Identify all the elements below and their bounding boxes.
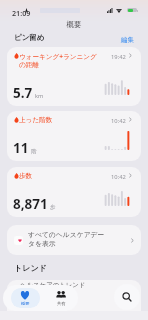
button[interactable]: 編集 bbox=[119, 34, 136, 46]
staticText: 共有 bbox=[57, 301, 66, 306]
staticText: 概要 bbox=[0, 20, 148, 29]
staticText: 上った階数 bbox=[19, 116, 53, 124]
staticText: 11 bbox=[13, 139, 29, 157]
staticText: 19:42 bbox=[111, 53, 126, 61]
staticText: 編集 bbox=[121, 36, 134, 44]
staticText: 歩数 bbox=[19, 172, 33, 180]
staticText: 5.7 bbox=[13, 84, 33, 102]
staticText: 21:09 bbox=[12, 8, 31, 18]
staticText: 10:42 bbox=[111, 117, 126, 125]
staticText: 概要 bbox=[21, 301, 30, 306]
staticText: 歩 bbox=[50, 204, 56, 211]
button[interactable]: 概要 bbox=[7, 290, 43, 306]
button[interactable]: ウォーキング+ランニングの距離 bbox=[7, 47, 141, 106]
button[interactable]: すべてのヘルスケアデータを表示 bbox=[7, 225, 141, 255]
staticText: 階 bbox=[31, 148, 37, 155]
button[interactable]: 共有 bbox=[43, 290, 78, 306]
button[interactable]: Search bbox=[114, 284, 140, 310]
staticText: トレンド bbox=[14, 263, 47, 273]
staticText: すべてのヘルスケアデータを表示 bbox=[28, 230, 111, 248]
staticText: ピン留め bbox=[14, 33, 45, 42]
staticText: 8,871 bbox=[13, 195, 48, 213]
button[interactable]: ヘルスケアのトレンド bbox=[7, 280, 141, 320]
button[interactable]: 歩数 bbox=[7, 167, 141, 217]
staticText: ヘルスケアのトレンド bbox=[20, 281, 86, 289]
staticText: ウォーキング+ランニングの距離 bbox=[19, 52, 99, 69]
staticText: 10:42 bbox=[111, 173, 126, 181]
staticText: km bbox=[35, 92, 44, 100]
button[interactable]: 上った階数 bbox=[7, 111, 141, 161]
